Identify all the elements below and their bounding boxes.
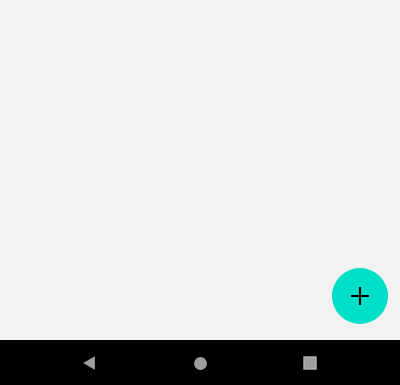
button[interactable]: Recent apps — [288, 341, 332, 385]
button[interactable]: Back — [67, 341, 111, 385]
button[interactable]: Home — [178, 341, 222, 385]
button[interactable]: Add — [332, 268, 388, 324]
